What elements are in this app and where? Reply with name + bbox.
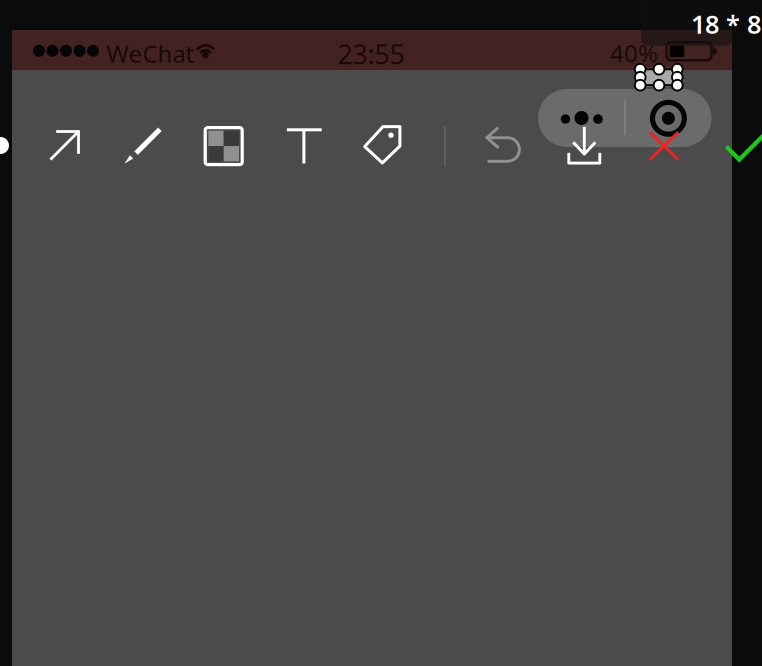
staticText: WeChat — [106, 37, 194, 69]
button[interactable]: Sticker tool — [363, 125, 403, 164]
button[interactable]: Pencil tool — [124, 127, 162, 164]
button[interactable]: Arrow tool — [49, 130, 80, 161]
button[interactable]: Undo — [486, 126, 521, 163]
staticText: 18 * 8 — [691, 7, 761, 41]
staticText: 40% — [610, 37, 658, 69]
staticText: 23:55 — [337, 36, 404, 72]
button[interactable]: Mosaic tool — [205, 128, 242, 165]
button[interactable]: Text tool — [286, 128, 322, 164]
